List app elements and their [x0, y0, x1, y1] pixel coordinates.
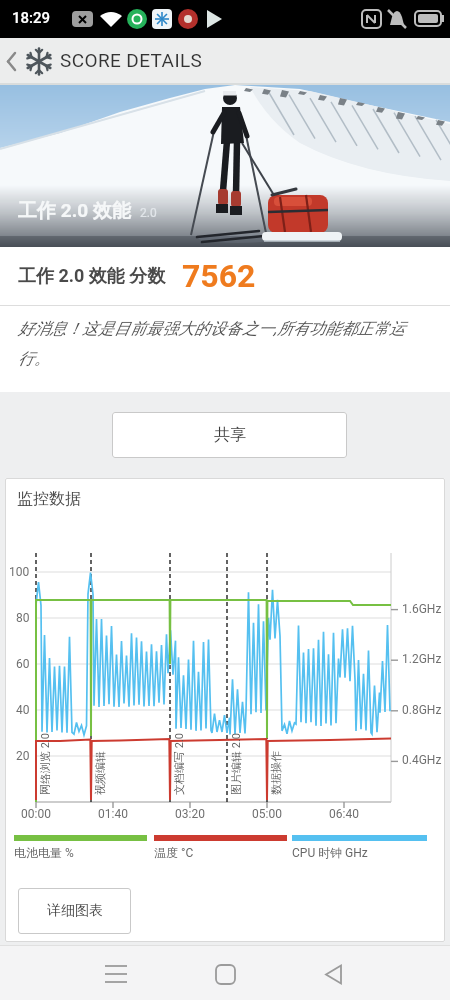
button[interactable]: SCORE DETAILS [60, 49, 203, 71]
staticText: 共享 [214, 425, 246, 445]
staticText: 图片编辑 2.0 [229, 733, 243, 795]
staticText: 01:40 [98, 807, 128, 821]
staticText: 06:40 [329, 807, 359, 821]
staticText: 2.0 [140, 206, 157, 220]
staticText: 03:20 [175, 807, 205, 821]
staticText: 1.6GHz [402, 602, 442, 616]
staticText: 60 [16, 657, 30, 671]
staticText: 20 [16, 749, 30, 763]
staticText: 0.4GHz [402, 753, 442, 767]
staticText: 100 [9, 565, 30, 579]
staticText: 1.2GHz [402, 652, 442, 666]
staticText: CPU 时钟 GHz [292, 845, 368, 860]
staticText: 80 [16, 611, 30, 625]
button[interactable] [94, 952, 138, 996]
button[interactable]: 共享 [112, 412, 347, 458]
staticText: 电池电量 % [14, 845, 74, 860]
staticText: 7562 [182, 257, 256, 295]
staticText: 工作 2.0 效能 [18, 199, 131, 223]
staticText: 40 [16, 703, 30, 717]
staticText: 网络浏览 2.0 [38, 733, 52, 795]
button[interactable] [311, 952, 355, 996]
staticText: 好消息！这是目前最强大的设备之一,所有功能都正常运行。 [18, 319, 418, 368]
staticText: 00:00 [21, 807, 51, 821]
staticText: 05:00 [252, 807, 282, 821]
button[interactable] [203, 952, 247, 996]
staticText: 18:29 [12, 9, 51, 27]
staticText: 0.8GHz [402, 703, 442, 717]
staticText: 视频编辑 [93, 751, 107, 795]
staticText: 数据操作 [269, 751, 283, 795]
staticText: 详细图表 [47, 902, 103, 920]
staticText: 温度 °C [154, 845, 194, 860]
staticText: 工作 2.0 效能 分数 [18, 265, 166, 288]
staticText: 文档编写 2.0 [172, 733, 186, 795]
button[interactable]: 详细图表 [18, 888, 131, 934]
staticText: 监控数据 [17, 489, 81, 509]
